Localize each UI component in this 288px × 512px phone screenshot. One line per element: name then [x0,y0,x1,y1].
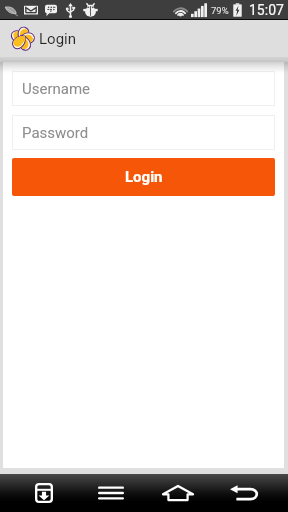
button[interactable]: Login [12,158,275,196]
staticText: Login [125,168,163,186]
staticText: Username [22,80,91,98]
button[interactable]: Menu [77,474,144,512]
staticText: Password [22,124,89,142]
button[interactable]: Save [10,474,77,512]
staticText: 79% [211,5,229,16]
staticText: 15:07 [249,2,284,18]
button[interactable]: Username [12,71,275,106]
button[interactable]: Back [211,474,278,512]
staticText: Login [39,30,76,48]
button[interactable]: Home [144,474,211,512]
button[interactable]: Password [12,115,275,150]
